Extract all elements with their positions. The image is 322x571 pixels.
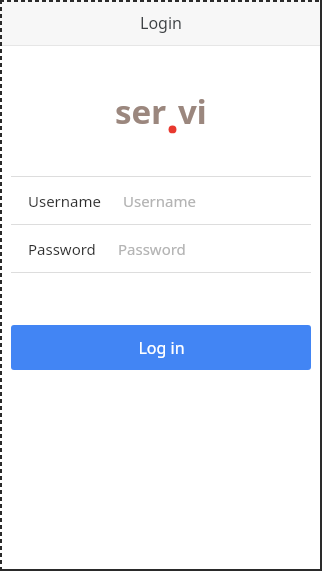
staticText: Username	[123, 191, 196, 211]
staticText: Login	[140, 12, 182, 34]
button[interactable]: Log in	[11, 325, 311, 370]
button[interactable]: Username	[11, 177, 311, 224]
staticText: vi	[178, 89, 207, 134]
staticText: Password	[118, 239, 186, 259]
button[interactable]: Password	[11, 225, 311, 272]
staticText: Password	[28, 239, 96, 259]
staticText: Username	[28, 191, 101, 211]
staticText: Log in	[138, 337, 185, 359]
staticText: ser	[115, 89, 167, 134]
